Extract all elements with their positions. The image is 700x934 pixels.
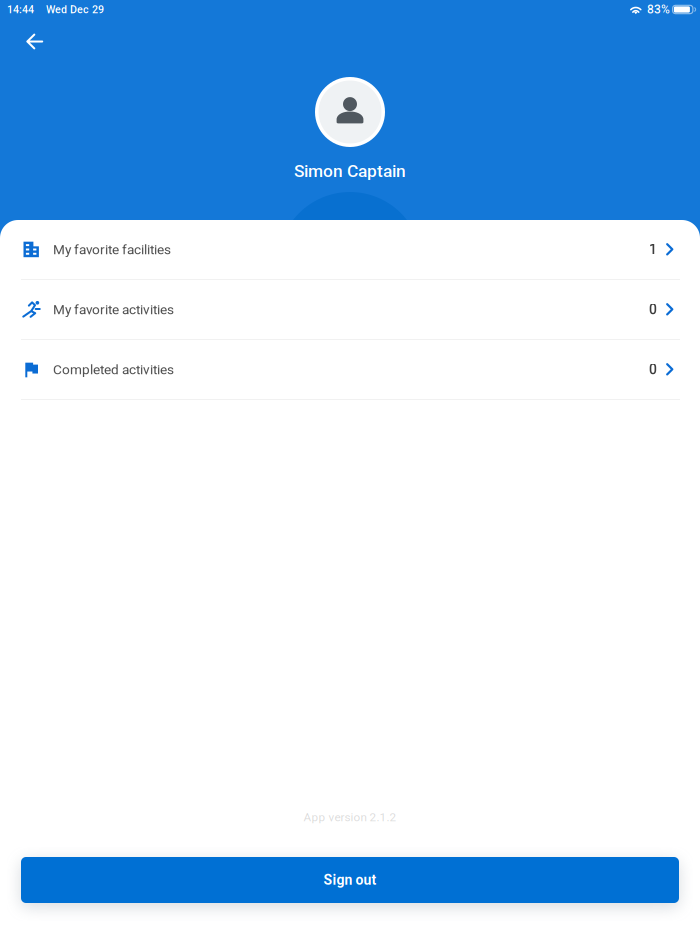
staticText: 0 [649,361,657,378]
button[interactable]: Back [12,19,57,64]
staticText: Wed Dec 29 [46,3,104,16]
staticText: My favorite facilities [53,241,171,257]
button[interactable]: My favorite activities [0,280,700,340]
staticText: Sign out [323,872,376,888]
button[interactable]: Sign out [21,857,679,903]
button[interactable]: Completed activities [0,340,700,400]
staticText: 14:44 [7,3,34,16]
staticText: 83% [647,2,670,17]
staticText: Completed activities [53,361,174,377]
staticText: App version 2.1.2 [303,810,396,824]
staticText: 0 [649,301,657,318]
staticText: My favorite activities [53,301,174,317]
staticText: 1 [649,241,657,258]
button[interactable]: My favorite facilities [0,220,700,280]
staticText: Simon Captain [294,161,406,181]
